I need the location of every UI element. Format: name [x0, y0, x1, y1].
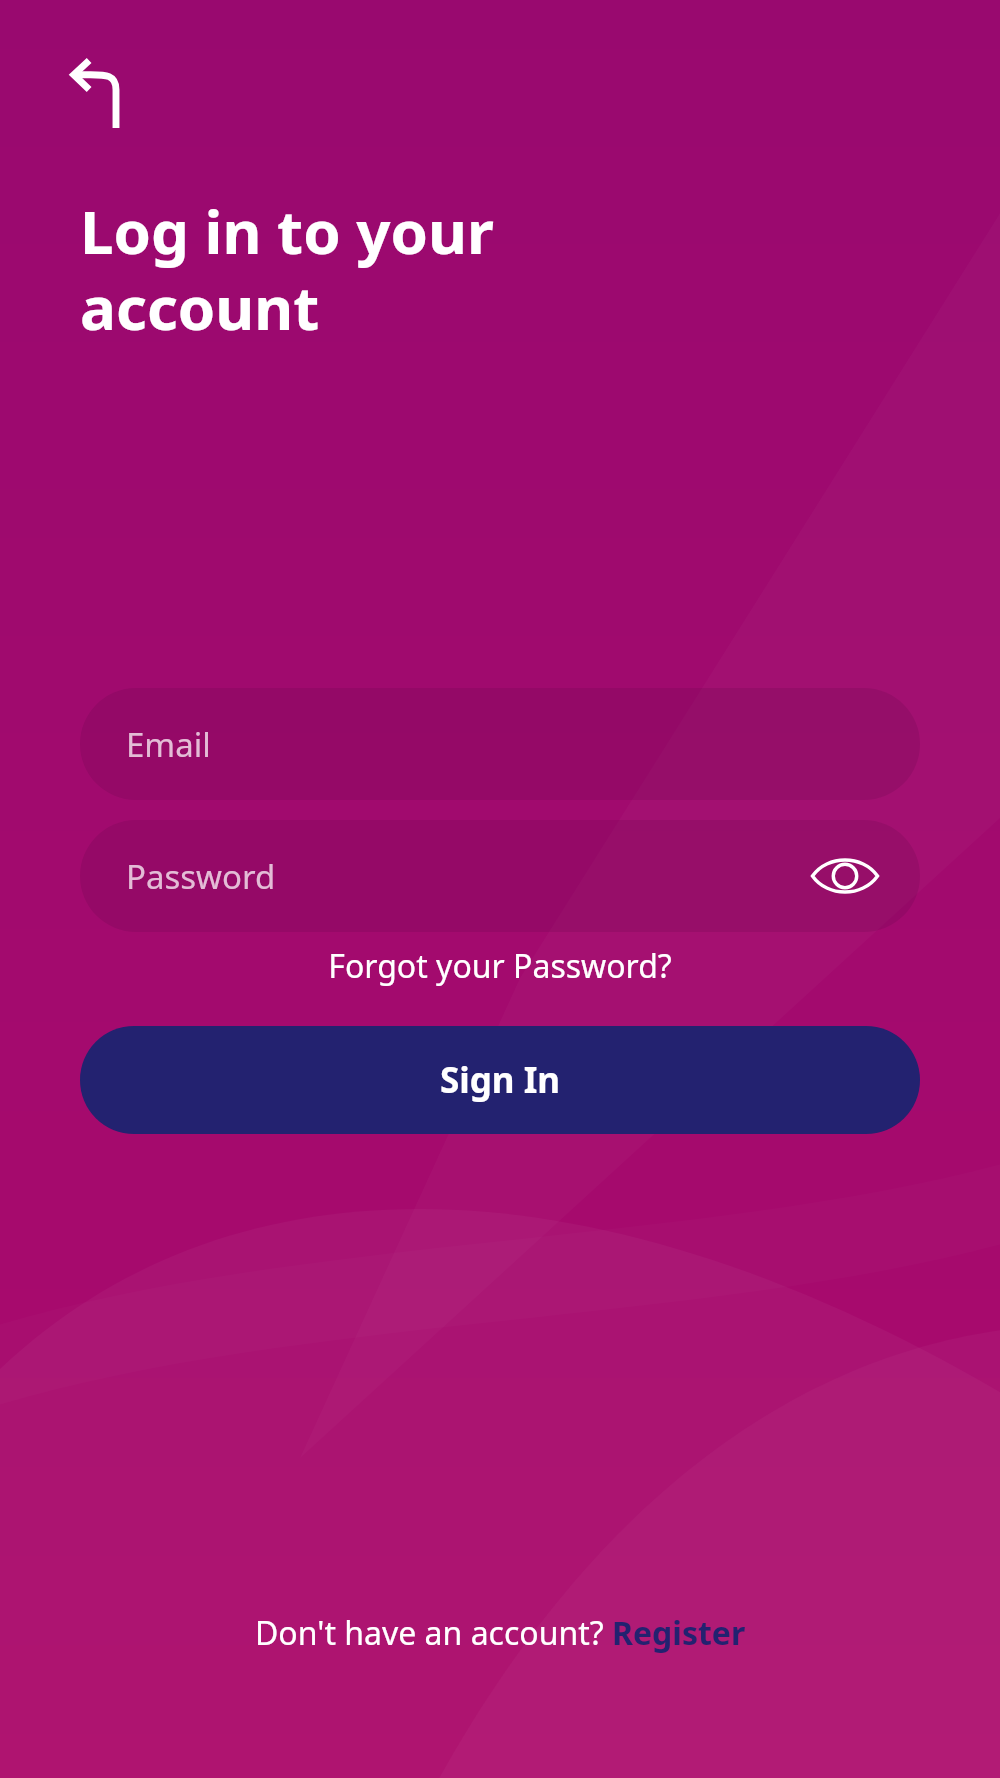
- button[interactable]: Back: [56, 46, 152, 142]
- staticText: Don't have an account?: [255, 1611, 612, 1655]
- button[interactable]: Sign In: [80, 1026, 920, 1134]
- button[interactable]: Password: [80, 820, 920, 932]
- staticText: Forgot your Password?: [328, 944, 672, 988]
- button[interactable]: Forgot your Password?: [0, 940, 1000, 992]
- button[interactable]: Register: [612, 1611, 746, 1655]
- staticText: Log in to your account: [80, 190, 494, 347]
- button[interactable]: Email: [80, 688, 920, 800]
- staticText: Password: [126, 854, 276, 899]
- button[interactable]: Show password: [808, 846, 882, 906]
- staticText: Register: [612, 1611, 746, 1655]
- staticText: Email: [126, 722, 211, 767]
- staticText: Sign In: [440, 1056, 561, 1104]
